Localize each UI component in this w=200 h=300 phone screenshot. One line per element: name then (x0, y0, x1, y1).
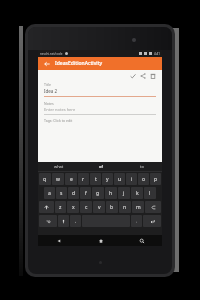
button[interactable]: what (38, 162, 80, 171)
button[interactable]: j (118, 187, 130, 199)
staticText: x (72, 204, 75, 211)
staticText: e (70, 176, 73, 183)
staticText: y (106, 176, 109, 183)
staticText: o (142, 176, 146, 183)
staticText: Enter notes here (44, 107, 76, 112)
staticText: v (98, 204, 101, 211)
staticText: r (82, 176, 85, 183)
staticText: j (123, 190, 125, 197)
button[interactable]: y (102, 173, 113, 185)
button[interactable]: del (145, 201, 161, 213)
button[interactable]: q (39, 173, 51, 185)
staticText: d (72, 190, 76, 197)
staticText: z (59, 204, 62, 211)
button[interactable]: s (56, 187, 67, 199)
button[interactable]: d (68, 187, 79, 199)
staticText: what (54, 164, 64, 169)
staticText: p (154, 176, 158, 183)
button[interactable]: o (138, 173, 149, 185)
button[interactable]: p (150, 173, 161, 185)
staticText: k (136, 190, 139, 197)
button[interactable]: Home (80, 235, 121, 246)
button[interactable]: Navigate up (42, 59, 52, 69)
staticText: Tags: Click to edit (44, 118, 73, 123)
button[interactable]: of (80, 162, 121, 171)
button[interactable]: x (67, 201, 79, 213)
staticText: a (48, 190, 51, 197)
staticText: h (109, 190, 113, 197)
button[interactable]: r (78, 173, 89, 185)
staticText: of (99, 164, 103, 169)
button[interactable]: Back (38, 235, 80, 246)
button[interactable]: l (144, 187, 156, 199)
button[interactable]: mic (58, 215, 69, 227)
button[interactable]: h (105, 187, 117, 199)
button[interactable]: Recents (121, 235, 162, 246)
staticText: l (149, 190, 151, 197)
staticText: i (131, 176, 133, 183)
staticText: b (110, 204, 114, 211)
staticText: c (85, 204, 88, 211)
staticText: neschi.net/code (40, 52, 63, 56)
staticText: t (95, 176, 97, 183)
button[interactable]: Delete (148, 71, 158, 81)
button[interactable]: t (90, 173, 101, 185)
button[interactable]: n (119, 201, 131, 213)
staticText: IdeasEditionActivity (55, 60, 103, 67)
button[interactable]: b (106, 201, 118, 213)
button[interactable]: k (131, 187, 143, 199)
button[interactable]: comma (70, 215, 81, 227)
button[interactable]: to (121, 162, 162, 171)
button[interactable]: i (126, 173, 137, 185)
staticText: to (140, 164, 144, 169)
staticText: Idea 2 (44, 88, 58, 94)
staticText: n (123, 204, 127, 211)
button[interactable]: w (52, 173, 64, 185)
button[interactable]: period (131, 215, 142, 227)
staticText: Title (44, 82, 51, 87)
button[interactable]: sym (39, 215, 57, 227)
staticText: g (96, 190, 100, 197)
staticText: f (85, 190, 87, 197)
button[interactable]: a (44, 187, 55, 199)
staticText: s (60, 190, 63, 197)
button[interactable]: enter (143, 215, 161, 227)
button[interactable]: Share (138, 71, 148, 81)
staticText: Notes (44, 101, 54, 106)
button[interactable]: g (92, 187, 104, 199)
button[interactable]: z (55, 201, 66, 213)
button[interactable]: c (80, 201, 92, 213)
staticText: u (118, 176, 122, 183)
staticText: 4:41 (154, 52, 160, 56)
button[interactable]: e (65, 173, 77, 185)
staticText: m (136, 204, 141, 211)
button[interactable]: shift (39, 201, 54, 213)
staticText: w (56, 176, 60, 183)
button[interactable]: m (132, 201, 144, 213)
button[interactable]: v (93, 201, 105, 213)
button[interactable]: f (80, 187, 91, 199)
button[interactable]: u (114, 173, 125, 185)
button[interactable]: Save (128, 71, 138, 81)
staticText: q (43, 176, 47, 183)
